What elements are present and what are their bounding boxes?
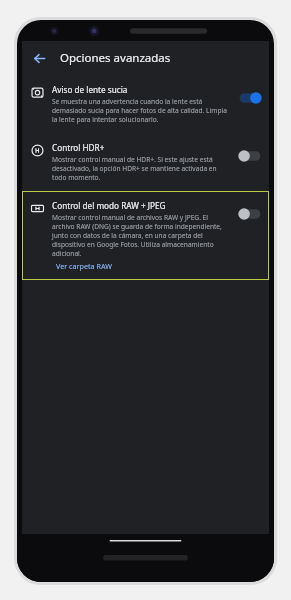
button[interactable]: Control HDR+ [22,133,269,191]
staticText: Se muestra una advertencia cuando la len… [52,97,231,124]
button[interactable]: Atrás [27,46,51,70]
staticText: Control HDR+ [52,142,105,153]
staticText: Opciones avanzadas [60,50,171,66]
button[interactable]: Activado [237,90,263,106]
staticText: Aviso de lente sucia [52,84,128,95]
button[interactable]: Aviso de lente sucia [22,75,269,133]
staticText: Control del modo RAW + JPEG [52,200,166,211]
staticText: Ver carpeta RAW [56,261,112,271]
button[interactable]: Desactivado [237,206,263,222]
button[interactable]: Control del modo RAW + JPEG [22,191,269,260]
button[interactable]: Ver carpeta RAW [56,261,112,271]
button[interactable]: Desactivado [237,148,263,164]
staticText: Mostrar control manual de HDR+. Si este … [52,155,231,182]
staticText: Mostrar control manual de archivos RAW y… [52,213,231,258]
